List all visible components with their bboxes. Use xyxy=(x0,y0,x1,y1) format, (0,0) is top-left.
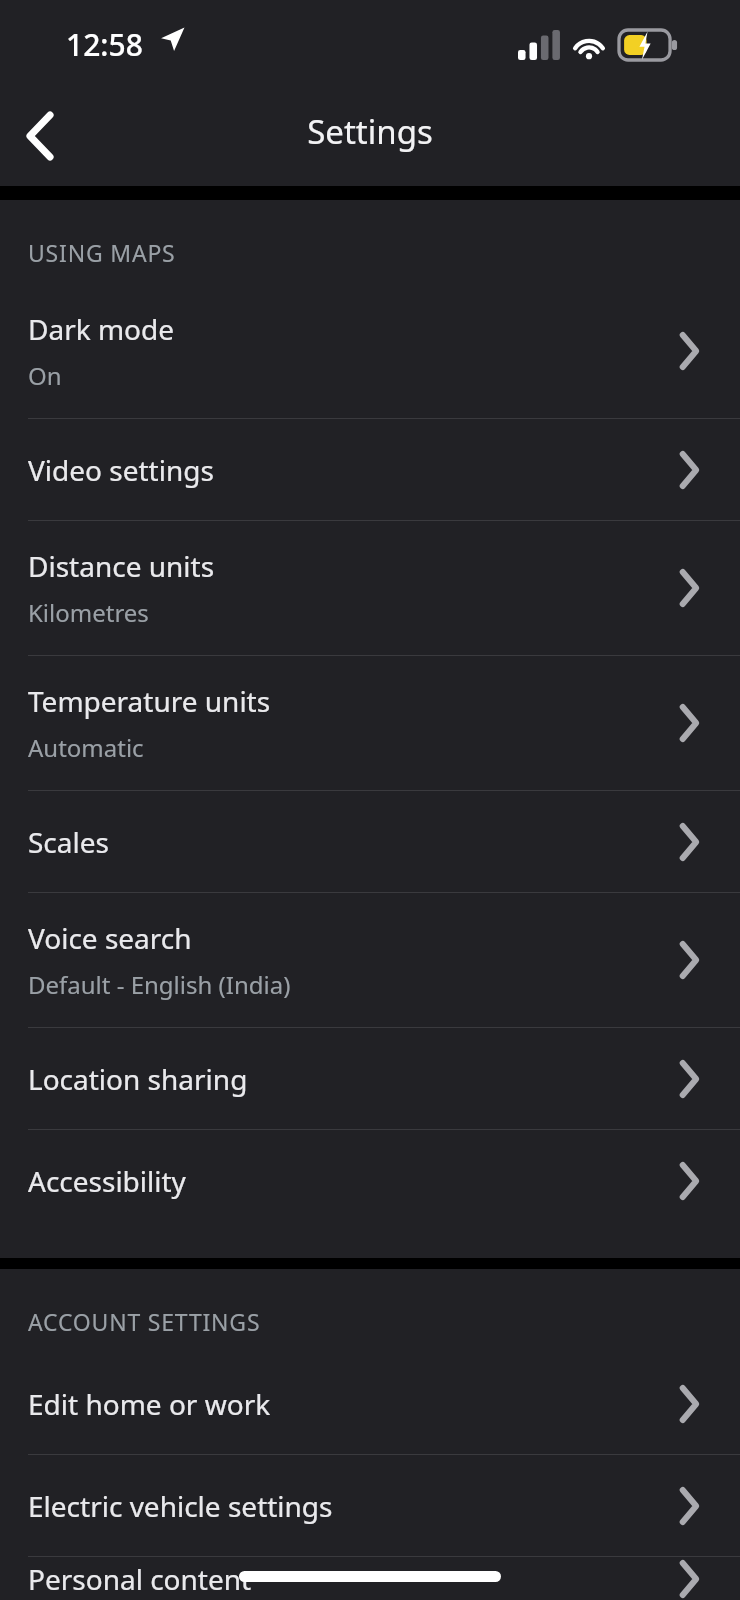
button[interactable]: Distance units xyxy=(0,521,740,655)
button[interactable]: Temperature units xyxy=(0,656,740,790)
button[interactable]: Personal content xyxy=(0,1557,740,1600)
button[interactable]: Dark mode xyxy=(0,284,740,418)
button[interactable]: Location sharing xyxy=(0,1028,740,1129)
staticText: Automatic xyxy=(28,731,144,764)
staticText: ACCOUNT SETTINGS xyxy=(28,1306,261,1337)
staticText: Personal content xyxy=(28,1560,252,1598)
staticText: Video settings xyxy=(28,451,214,489)
staticText: USING MAPS xyxy=(28,237,176,268)
button[interactable]: Scales xyxy=(0,791,740,892)
staticText: Kilometres xyxy=(28,596,149,629)
button[interactable]: Accessibility xyxy=(0,1130,740,1231)
button[interactable]: Electric vehicle settings xyxy=(0,1455,740,1556)
staticText: Edit home or work xyxy=(28,1385,271,1423)
staticText: Electric vehicle settings xyxy=(28,1487,333,1525)
staticText: Distance units xyxy=(28,547,215,585)
button[interactable]: Voice search xyxy=(0,893,740,1027)
button[interactable]: Back xyxy=(6,102,74,170)
button[interactable]: Video settings xyxy=(0,419,740,520)
staticText: Voice search xyxy=(28,919,192,957)
staticText: Temperature units xyxy=(28,682,271,720)
staticText: Scales xyxy=(28,823,109,861)
staticText: Settings xyxy=(0,109,740,154)
staticText: Dark mode xyxy=(28,310,175,348)
staticText: 12:58 xyxy=(66,24,143,65)
button[interactable]: Edit home or work xyxy=(0,1353,740,1454)
staticText: Default - English (India) xyxy=(28,968,291,1001)
staticText: On xyxy=(28,359,62,392)
staticText: Location sharing xyxy=(28,1060,248,1098)
staticText: Accessibility xyxy=(28,1162,186,1200)
